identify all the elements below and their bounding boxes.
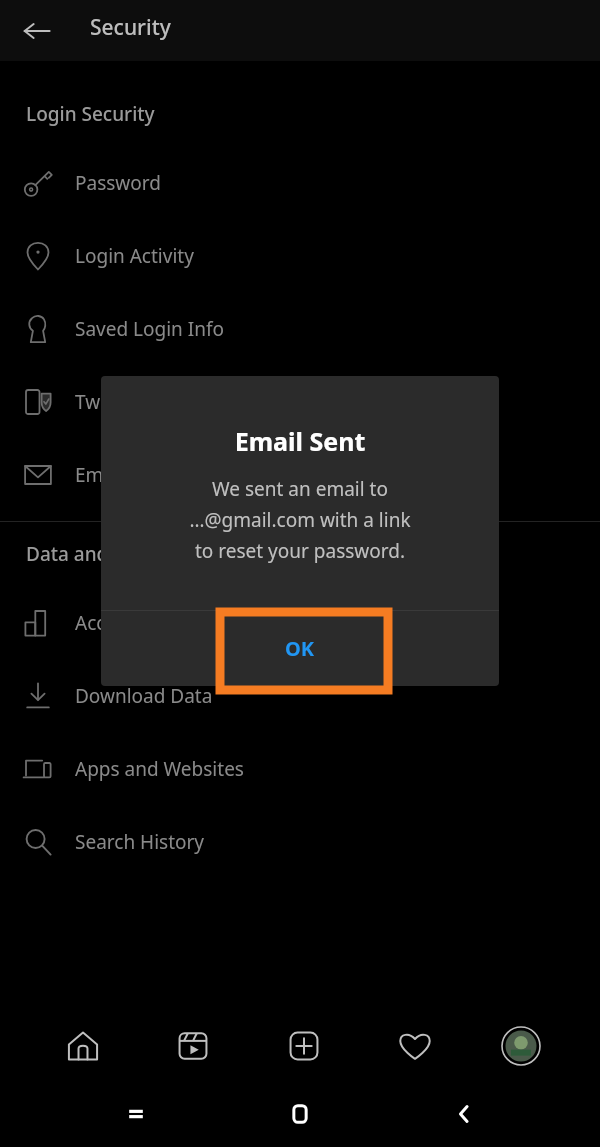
staticText: Data and History [26,541,179,567]
button[interactable]: Back [14,8,60,54]
staticText: Login Security [26,101,155,127]
staticText: Email From Instagram [75,462,273,488]
button[interactable]: Email From Instagram [0,438,600,511]
button[interactable]: Back [436,1086,492,1142]
button[interactable]: Profile [497,1022,545,1070]
button[interactable]: Home [55,1018,111,1074]
button[interactable]: Recents [108,1086,164,1142]
button[interactable]: Reels [165,1018,221,1074]
button[interactable]: Home [272,1086,328,1142]
button[interactable]: Access Data [0,586,600,659]
staticText: Email Sent [101,424,499,458]
staticText: Search History [75,829,205,855]
button[interactable]: Password [0,146,600,219]
staticText: Password [75,170,161,196]
staticText: We sent an email to …@gmail.com with a l… [121,476,479,564]
button[interactable]: Activity [387,1018,443,1074]
staticText: Login Activity [75,243,194,269]
staticText: OK [285,635,315,662]
button[interactable]: Download Data [0,659,600,732]
button[interactable]: Apps and Websites [0,732,600,805]
button[interactable]: OK [101,611,499,686]
staticText: Apps and Websites [75,756,244,782]
button[interactable]: Two-Factor Authentication [0,365,600,438]
button[interactable]: Login Activity [0,219,600,292]
staticText: Saved Login Info [75,316,225,342]
staticText: Access Data [75,610,182,636]
staticText: Two-Factor Authentication [75,389,310,415]
button[interactable]: Create [276,1018,332,1074]
staticText: Download Data [75,683,213,709]
button[interactable]: Saved Login Info [0,292,600,365]
staticText: Security [90,13,171,42]
button[interactable]: Search History [0,805,600,878]
